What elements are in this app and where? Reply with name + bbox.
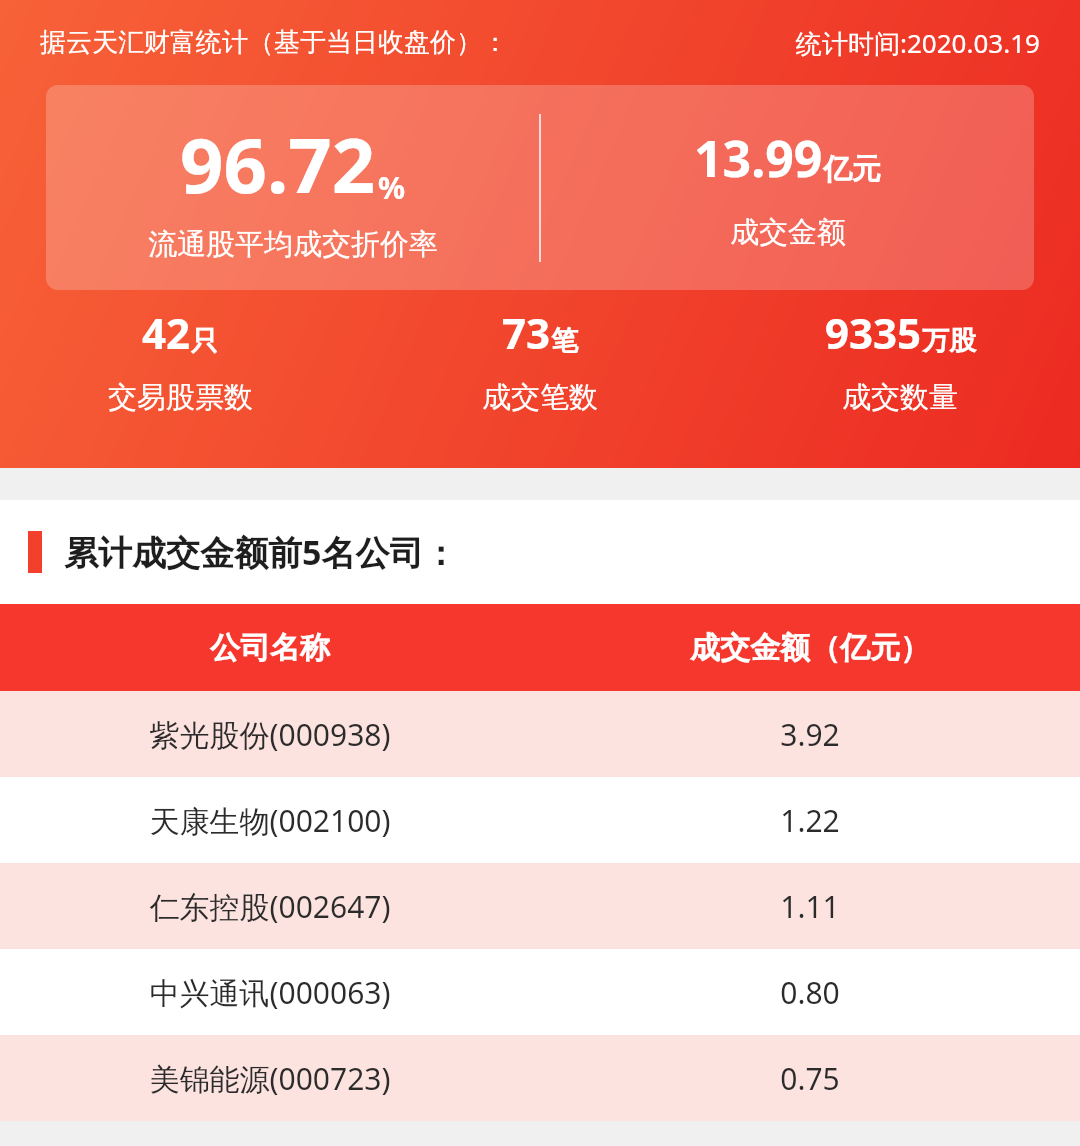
staticText: 0.75 — [540, 1058, 1080, 1099]
staticText: 美锦能源(000723) — [0, 1058, 540, 1099]
staticText: 交易股票数 — [108, 379, 253, 416]
staticText: 万股 — [922, 324, 976, 358]
staticText: 96.72 — [180, 112, 376, 216]
staticText: 0.80 — [540, 972, 1080, 1013]
staticText: 统计时间:2020.03.19 — [796, 25, 1040, 61]
staticText: 公司名称 — [0, 629, 540, 667]
button[interactable]: 9335 — [720, 290, 1080, 416]
staticText: 13.99 — [694, 124, 823, 192]
staticText: 紫光股份(000938) — [0, 714, 540, 755]
button[interactable]: 仁东控股(002647) — [0, 863, 1080, 949]
button[interactable]: 美锦能源(000723) — [0, 1035, 1080, 1121]
button[interactable]: 42 — [0, 290, 360, 416]
staticText: 中兴通讯(000063) — [0, 972, 540, 1013]
staticText: 累计成交金额前5名公司： — [64, 529, 458, 575]
staticText: 亿元 — [823, 151, 881, 188]
staticText: 据云天汇财富统计（基于当日收盘价）： — [40, 26, 508, 59]
staticText: 笔 — [551, 324, 578, 358]
staticText: 成交数量 — [842, 379, 958, 416]
staticText: 73 — [502, 304, 551, 361]
staticText: 9335 — [825, 304, 922, 361]
staticText: 成交笔数 — [482, 379, 598, 416]
button[interactable]: 中兴通讯(000063) — [0, 949, 1080, 1035]
staticText: 流通股平均成交折价率 — [148, 226, 438, 263]
staticText: 3.92 — [540, 714, 1080, 755]
staticText: 天康生物(002100) — [0, 800, 540, 841]
staticText: % — [378, 167, 406, 208]
button[interactable]: 96.72 — [46, 85, 1034, 290]
button[interactable]: 天康生物(002100) — [0, 777, 1080, 863]
staticText: 仁东控股(002647) — [0, 886, 540, 927]
staticText: 1.11 — [540, 886, 1080, 927]
staticText: 只 — [191, 324, 218, 358]
staticText: 成交金额（亿元） — [540, 629, 1080, 667]
button[interactable]: 紫光股份(000938) — [0, 691, 1080, 777]
staticText: 42 — [142, 304, 191, 361]
button[interactable]: 73 — [360, 290, 720, 416]
staticText: 1.22 — [540, 800, 1080, 841]
staticText: 成交金额 — [730, 214, 846, 251]
